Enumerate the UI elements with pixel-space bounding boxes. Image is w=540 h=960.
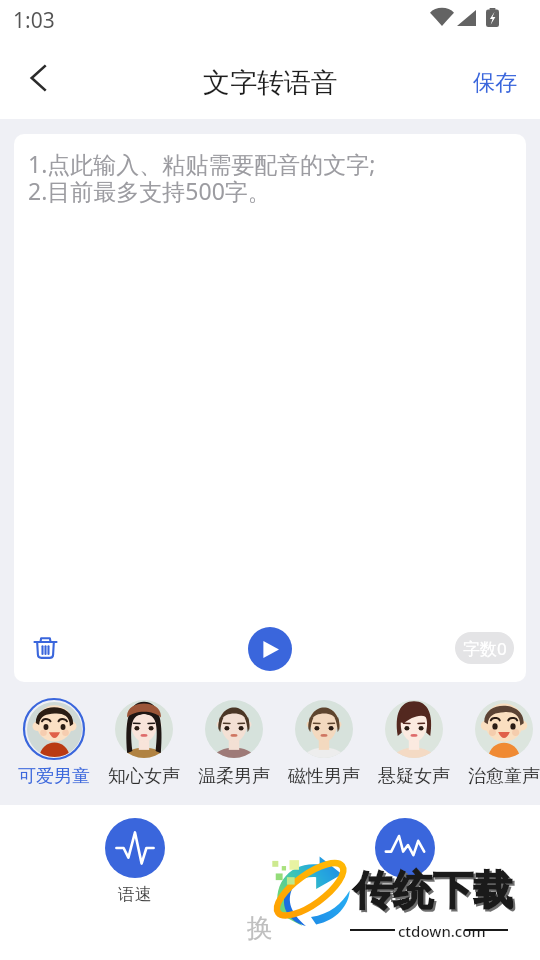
staticText: 温柔男声 — [198, 765, 270, 788]
staticText: 文字转语音 — [203, 66, 338, 100]
staticText: 可爱男童 — [18, 765, 90, 788]
staticText: 字数0 — [463, 637, 507, 660]
staticText: 传统下载 — [355, 867, 515, 917]
staticText: 悬疑女声 — [378, 765, 450, 788]
button[interactable]: 温柔男声 — [189, 697, 279, 788]
staticText: 治愈童声 — [468, 765, 540, 788]
staticText: 语速 — [118, 884, 152, 905]
staticText: 1:03 — [13, 6, 55, 35]
button[interactable]: Back — [18, 57, 60, 99]
staticText: 音调 — [388, 884, 422, 905]
button[interactable]: 可爱男童 — [9, 697, 99, 788]
staticText: 知心女声 — [108, 765, 180, 788]
staticText: 换 — [247, 912, 273, 945]
button[interactable]: Clear text — [29, 631, 61, 663]
staticText: 磁性男声 — [288, 765, 360, 788]
button[interactable]: 治愈童声 — [459, 697, 540, 788]
staticText: 保存 — [473, 69, 517, 97]
button[interactable]: 音调 — [360, 818, 450, 905]
button[interactable]: 字数0 — [455, 632, 514, 664]
button[interactable]: 知心女声 — [99, 697, 189, 788]
staticText: 传统下载 — [353, 865, 513, 915]
button[interactable]: 悬疑女声 — [369, 697, 459, 788]
button[interactable]: 语速 — [90, 818, 180, 905]
staticText: ctdown.com — [398, 921, 486, 941]
staticText: 1.点此输入、粘贴需要配音的文字; 2.目前最多支持500字。 — [28, 148, 376, 207]
button[interactable]: Play — [248, 627, 292, 671]
button[interactable]: 保存 — [463, 61, 527, 105]
button[interactable]: 磁性男声 — [279, 697, 369, 788]
